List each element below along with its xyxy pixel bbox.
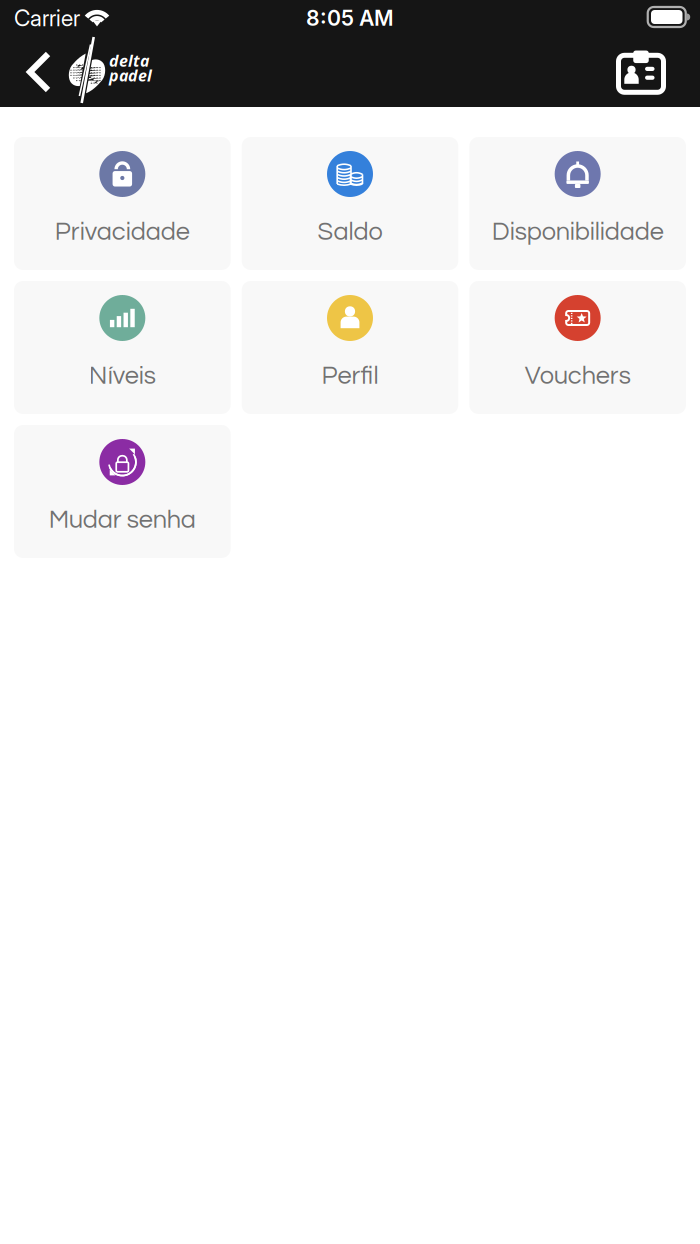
- staticText: Disponibilidade: [492, 219, 664, 245]
- staticText: Níveis: [89, 363, 156, 389]
- staticText: Vouchers: [525, 363, 631, 389]
- staticText: delta: [109, 50, 149, 71]
- button[interactable]: Vouchers: [469, 281, 686, 414]
- button[interactable]: Disponibilidade: [469, 137, 686, 270]
- staticText: Perfil: [321, 363, 378, 389]
- button[interactable]: Mudar senha: [14, 425, 231, 558]
- staticText: Carrier: [14, 4, 80, 32]
- button[interactable]: Privacidade: [14, 137, 231, 270]
- button[interactable]: Back: [11, 37, 67, 107]
- staticText: 8:05 AM: [306, 5, 394, 31]
- staticText: Mudar senha: [49, 507, 196, 533]
- staticText: padel: [109, 64, 152, 86]
- button[interactable]: Saldo: [242, 137, 458, 270]
- staticText: Saldo: [317, 219, 382, 245]
- button[interactable]: Níveis: [14, 281, 231, 414]
- button[interactable]: Member card: [606, 36, 676, 106]
- staticText: Privacidade: [55, 219, 190, 245]
- button[interactable]: Perfil: [242, 281, 458, 414]
